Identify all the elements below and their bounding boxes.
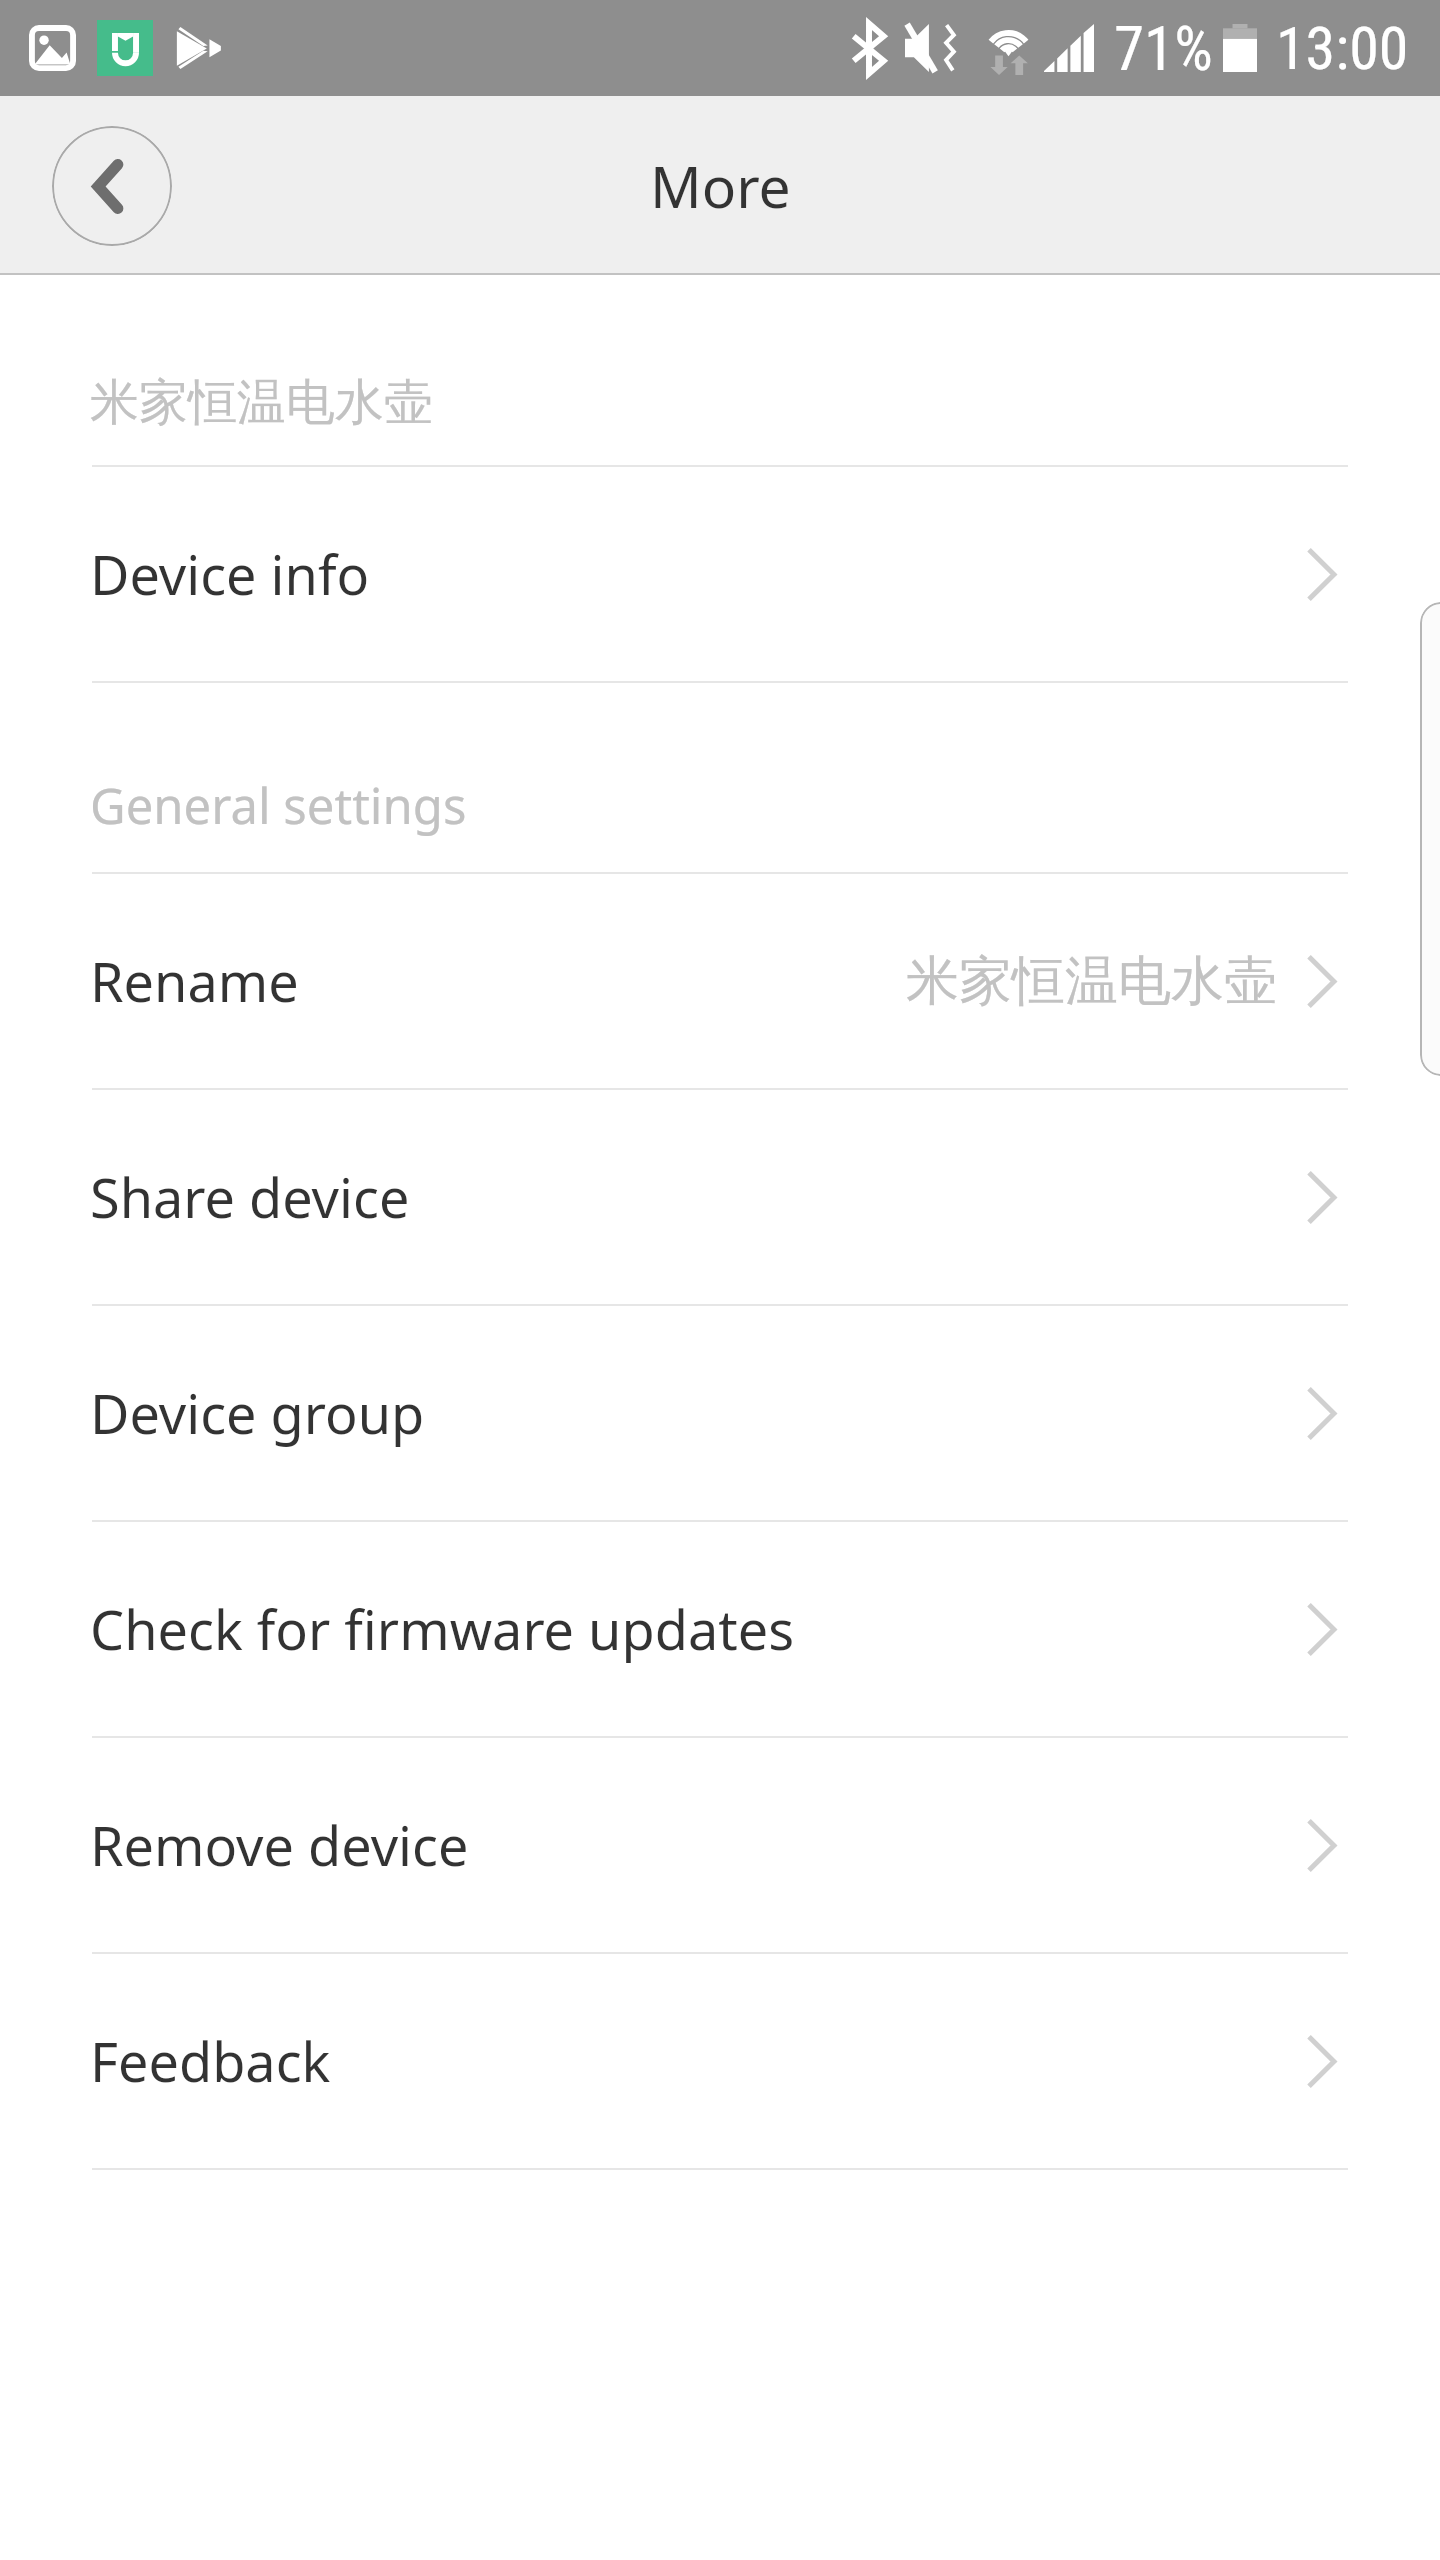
staticText: General settings (90, 772, 467, 839)
button[interactable]: Rename (0, 874, 1440, 1088)
staticText: 71% (1114, 13, 1213, 84)
staticText: Rename (90, 944, 299, 1018)
staticText: Share device (90, 1160, 410, 1234)
staticText: Device info (90, 537, 370, 611)
staticText: Remove device (90, 1808, 469, 1882)
staticText: 米家恒温电水壶 (906, 948, 1277, 1015)
button[interactable]: Device group (0, 1306, 1440, 1520)
staticText: 13:00 (1276, 13, 1409, 83)
staticText: Check for firmware updates (90, 1592, 794, 1666)
button[interactable]: Check for firmware updates (0, 1522, 1440, 1736)
button[interactable]: Back (52, 126, 172, 246)
button[interactable]: Share device (0, 1090, 1440, 1304)
button[interactable]: Feedback (0, 1954, 1440, 2168)
staticText: Device group (90, 1376, 425, 1450)
staticText: 米家恒温电水壶 (90, 372, 433, 434)
button[interactable]: Device info (0, 467, 1440, 681)
staticText: More (650, 147, 791, 225)
staticText: Feedback (90, 2024, 331, 2098)
button[interactable]: Remove device (0, 1738, 1440, 1952)
